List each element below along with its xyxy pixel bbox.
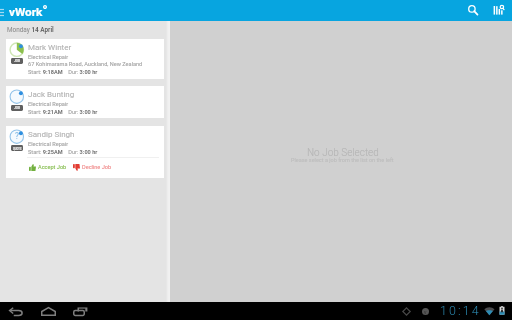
staticText: QUOTE [13,147,22,150]
staticText: Start: 9:21AM Dur: 3:00 hr [28,109,98,116]
button[interactable]: JOB [6,86,164,118]
staticText: ? [15,131,19,141]
button[interactable]: ? [6,126,164,178]
staticText: v [424,309,427,315]
button[interactable]: Decline Job [73,162,112,173]
staticText: 67 Kohimarama Road, Auckland, New Zealan… [28,61,143,68]
staticText: Jack Bunting [28,90,75,99]
staticText: Mark Winter [28,43,72,52]
button[interactable]: Accept Job [29,162,67,173]
staticText: 10:14 [440,303,481,318]
staticText: No Job Selected [307,147,379,159]
button[interactable]: Search [462,0,484,21]
staticText: Decline Job [82,164,112,171]
button[interactable]: Back [6,302,26,320]
staticText: Start: 9:18AM Dur: 3:00 hr [28,69,98,76]
staticText: Please select a job from the list on the… [291,157,394,163]
button[interactable]: Menu [0,0,8,21]
staticText: Start: 9:25AM Dur: 3:00 hr [28,149,98,156]
button[interactable]: Recent apps [70,302,90,320]
staticText: Electrical Repair [28,101,69,108]
staticText: Accept Job [38,164,67,171]
staticText: Monday 14 April [7,26,54,34]
staticText: Sandip Singh [28,130,75,139]
staticText: JOB [14,59,21,63]
staticText: vWork [9,5,43,19]
button[interactable]: Reports [488,0,510,21]
staticText: Electrical Repair [28,141,69,148]
button[interactable]: Home [38,302,58,320]
staticText: Electrical Repair [28,54,69,61]
staticText: JOB [14,106,21,110]
button[interactable]: JOB [6,39,164,79]
